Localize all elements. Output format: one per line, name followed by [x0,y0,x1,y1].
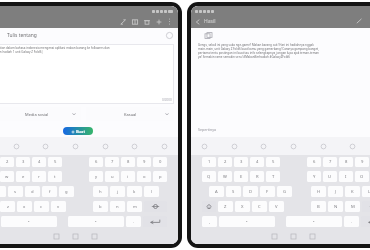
button[interactable]: 8 [121,157,135,167]
button[interactable]: S [226,186,241,197]
button[interactable]: E [234,171,248,182]
button[interactable]: z [0,201,15,212]
button[interactable]: Back [92,234,97,239]
button[interactable]: 8 [339,157,353,167]
button[interactable]: 1 [202,157,216,167]
button[interactable]: Z [218,201,233,212]
button[interactable]: n [110,201,125,212]
button[interactable]: 6 [89,157,103,167]
button[interactable]: c [34,201,49,212]
button[interactable]: , [202,216,217,227]
button[interactable]: X [235,201,250,212]
button[interactable]: w [0,171,14,182]
button[interactable]: l [144,186,159,197]
button[interactable]: y [89,171,103,182]
button[interactable]: 9 [355,157,369,167]
button[interactable]: b [93,201,108,212]
button[interactable]: Keyboard tool [201,143,208,150]
button[interactable]: Split view [132,19,138,25]
button[interactable]: I [339,171,353,182]
button[interactable]: e [16,171,30,182]
button[interactable]: caption dalam bahasa indonesia mengenai … [0,44,174,104]
button[interactable]: Shift [202,201,216,212]
button[interactable]: v [51,201,66,212]
button[interactable]: U [323,171,337,182]
button[interactable]: Copy [205,32,212,39]
button[interactable]: M [345,201,360,212]
button[interactable]: 2 [0,157,14,167]
button[interactable]: Recents [272,234,277,239]
button[interactable]: Media sosial [0,107,81,121]
button[interactable]: H [311,186,326,197]
button[interactable]: Home [73,234,78,239]
button[interactable]: K [345,186,360,197]
button[interactable]: Expand [120,19,126,25]
button[interactable]: Backspace [144,201,167,212]
button[interactable]: More options [168,18,171,25]
button[interactable]: Keyboard tool [290,143,297,150]
button[interactable]: 4 [250,157,264,167]
button[interactable]: L [362,186,370,197]
button[interactable]: Keyboard tool [13,143,20,150]
button[interactable]: x [17,201,32,212]
button[interactable]: j [110,186,125,197]
button[interactable]: A [209,186,224,197]
button[interactable]: Keyboard tool [320,143,327,150]
button[interactable]: o [137,171,151,182]
button[interactable]: Keyboard tool [260,143,267,150]
button[interactable]: Q [202,171,216,182]
button[interactable]: Kasual [86,107,174,121]
button[interactable]: r [32,171,46,182]
button[interactable]: C [252,201,267,212]
button[interactable]: Keyboard tool [131,143,138,150]
button[interactable]: Keyboard tool [42,143,49,150]
button[interactable]: 6 [307,157,321,167]
button[interactable]: 3 [234,157,248,167]
button[interactable]: Help [166,32,173,39]
button[interactable]: Y [307,171,321,182]
button[interactable]: Keyboard tool [349,143,356,150]
button[interactable]: Home [291,234,296,239]
button[interactable]: Back [310,234,315,239]
button[interactable]: u [105,171,119,182]
button[interactable]: B [311,201,326,212]
button[interactable]: h [93,186,108,197]
button[interactable]: Recents [54,234,59,239]
button[interactable]: G [277,186,292,197]
button[interactable]: Expand [356,18,362,24]
button[interactable]: i [121,171,135,182]
button[interactable]: 4 [32,157,46,167]
button[interactable]: D [243,186,258,197]
button[interactable]: V [269,201,284,212]
button[interactable]: Keyboard tool [161,143,168,150]
button[interactable]: F [260,186,275,197]
button[interactable]: 3 [16,157,30,167]
button[interactable]: s [8,186,23,197]
button[interactable]: m [127,201,142,212]
button[interactable]: t [48,171,62,182]
button[interactable]: Buat [63,127,93,135]
button[interactable]: Keyboard tool [102,143,109,150]
button[interactable]: p [153,171,167,182]
button[interactable]: Enter [361,216,370,227]
button[interactable]: 9 [137,157,151,167]
button[interactable]: W [218,171,232,182]
button[interactable]: 2 [218,157,232,167]
button[interactable]: g [59,186,74,197]
button[interactable]: R [250,171,264,182]
button[interactable]: 0 [153,157,167,167]
button[interactable]: Delete [144,19,150,25]
button[interactable]: J [328,186,343,197]
button[interactable]: Keyboard tool [231,143,238,150]
button[interactable]: d [25,186,40,197]
button[interactable]: Add [156,19,162,25]
button[interactable]: k [127,186,142,197]
